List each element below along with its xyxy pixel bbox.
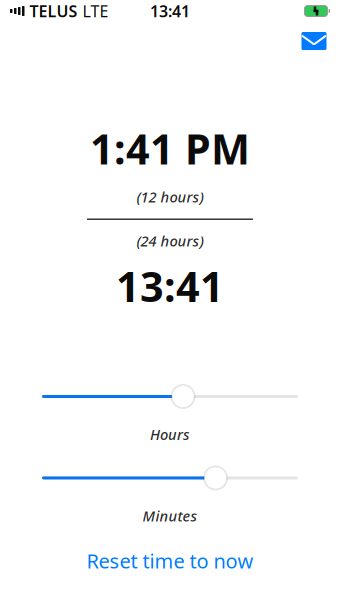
- staticText: Hours: [150, 424, 190, 444]
- staticText: 13:41: [116, 258, 224, 313]
- staticText: 13:41: [150, 0, 190, 22]
- staticText: TELUS: [29, 0, 77, 22]
- button[interactable]: Reset time to now: [70, 537, 269, 584]
- staticText: Minutes: [142, 506, 197, 525]
- staticText: 1:41 PM: [90, 121, 250, 176]
- staticText: (12 hours): [136, 187, 203, 206]
- button[interactable]: Mail: [301, 30, 327, 52]
- staticText: Reset time to now: [86, 547, 253, 574]
- staticText: LTE: [82, 0, 108, 22]
- staticText: (24 hours): [136, 231, 203, 250]
- button[interactable]: Time slider: [42, 382, 298, 410]
- button[interactable]: Time slider: [42, 464, 298, 492]
